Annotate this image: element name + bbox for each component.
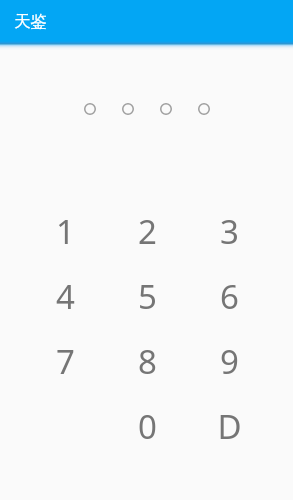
- button[interactable]: 8: [106, 329, 188, 394]
- staticText: 0: [138, 404, 157, 449]
- button[interactable]: 9: [188, 329, 270, 394]
- button[interactable]: 7: [24, 329, 106, 394]
- button[interactable]: 5: [106, 264, 188, 329]
- button[interactable]: 2: [106, 199, 188, 264]
- button[interactable]: 天鉴: [0, 0, 293, 43]
- staticText: 7: [56, 339, 75, 384]
- staticText: 5: [138, 274, 157, 319]
- button[interactable]: Delete: [188, 394, 270, 459]
- staticText: 9: [220, 339, 239, 384]
- button[interactable]: 0: [106, 394, 188, 459]
- button[interactable]: 1: [24, 199, 106, 264]
- staticText: 6: [220, 274, 239, 319]
- staticText: 2: [138, 209, 157, 254]
- staticText: 8: [138, 339, 157, 384]
- staticText: D: [217, 404, 242, 449]
- staticText: 4: [56, 274, 75, 319]
- staticText: 3: [220, 209, 239, 254]
- staticText: 1: [56, 209, 75, 254]
- button[interactable]: 4: [24, 264, 106, 329]
- button[interactable]: 3: [188, 199, 270, 264]
- staticText: 天鉴: [14, 11, 47, 32]
- button[interactable]: 6: [188, 264, 270, 329]
